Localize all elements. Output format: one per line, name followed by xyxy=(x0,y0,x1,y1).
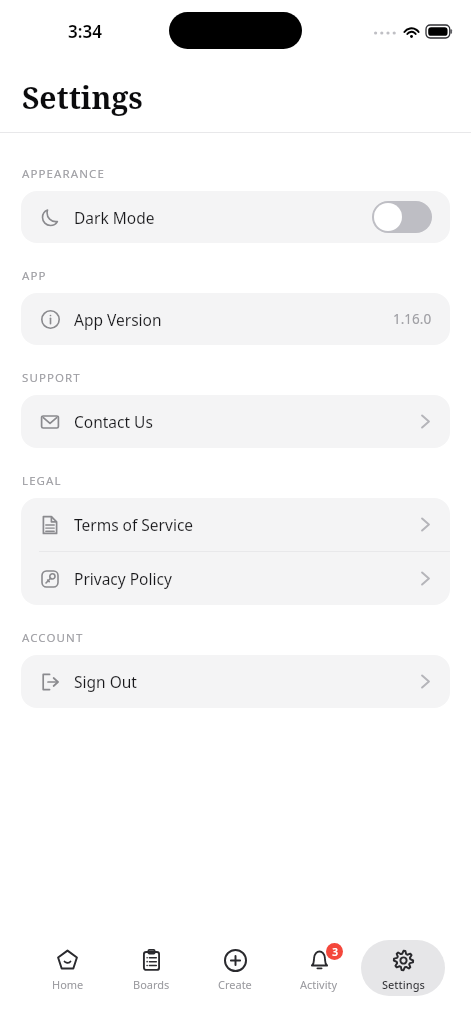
button[interactable]: Create xyxy=(193,940,277,996)
staticText: 1.16.0 xyxy=(393,310,432,328)
button[interactable]: Settings xyxy=(361,940,445,996)
button[interactable]: Privacy Policy xyxy=(21,552,450,605)
staticText: Terms of Service xyxy=(74,514,194,535)
staticText: Activity xyxy=(300,977,338,992)
staticText: Sign Out xyxy=(74,671,137,692)
button[interactable]: Dark Mode xyxy=(21,191,450,243)
staticText: 3:34 xyxy=(68,20,102,43)
staticText: Dark Mode xyxy=(74,207,155,228)
staticText: App Version xyxy=(74,309,162,330)
staticText: SUPPORT xyxy=(22,370,81,386)
button[interactable]: Terms of Service xyxy=(21,498,450,551)
button[interactable]: Sign Out xyxy=(21,655,450,708)
button[interactable]: App Version xyxy=(21,293,450,345)
button[interactable]: Home xyxy=(26,940,109,996)
button[interactable]: Contact Us xyxy=(21,395,450,448)
staticText: Home xyxy=(52,977,84,992)
button[interactable]: Dark Mode toggle xyxy=(372,201,432,233)
staticText: Privacy Policy xyxy=(74,568,172,589)
button[interactable]: 3 xyxy=(277,940,361,996)
button[interactable]: Boards xyxy=(109,940,193,996)
staticText: Create xyxy=(218,977,252,992)
staticText: Contact Us xyxy=(74,411,153,432)
staticText: 3 xyxy=(332,945,338,959)
staticText: Settings xyxy=(22,77,143,118)
staticText: Settings xyxy=(382,977,425,992)
staticText: APP xyxy=(22,268,47,284)
staticText: ACCOUNT xyxy=(22,630,84,646)
staticText: LEGAL xyxy=(22,473,62,489)
staticText: APPEARANCE xyxy=(22,166,105,182)
staticText: Boards xyxy=(133,977,170,992)
